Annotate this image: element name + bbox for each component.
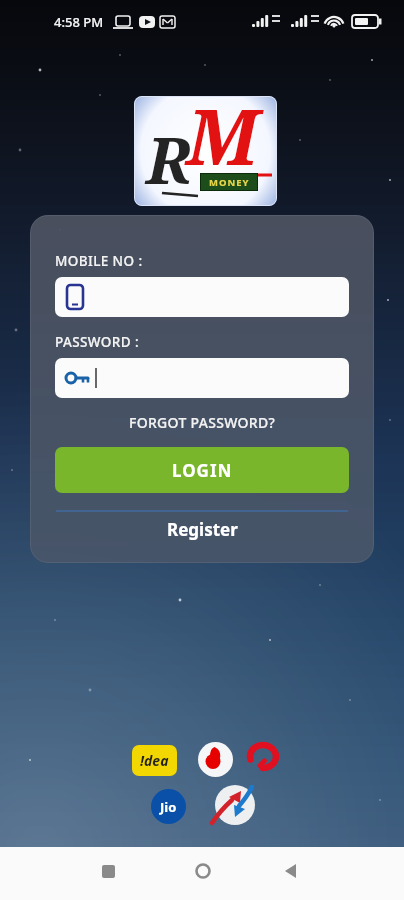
button[interactable]: Jio — [151, 789, 186, 824]
staticText: MONEY — [209, 176, 250, 189]
staticText: M — [186, 96, 259, 188]
staticText: !dea — [140, 751, 169, 770]
button[interactable]: LOGIN — [55, 447, 349, 493]
button[interactable] — [208, 783, 256, 828]
button[interactable]: R — [134, 96, 277, 206]
button[interactable] — [88, 851, 128, 891]
button[interactable] — [271, 851, 311, 891]
staticText: MOBILE NO : — [55, 252, 143, 270]
button[interactable] — [55, 277, 349, 317]
button[interactable] — [198, 742, 233, 777]
staticText: R — [146, 116, 192, 203]
staticText: FORGOT PASSWORD? — [129, 413, 276, 432]
button[interactable]: Register — [30, 518, 374, 541]
button[interactable] — [55, 358, 349, 398]
staticText: Jio — [160, 798, 177, 816]
button[interactable]: FORGOT PASSWORD? — [30, 413, 374, 432]
staticText: 4:58 PM — [54, 13, 104, 31]
staticText: Register — [167, 518, 238, 541]
button[interactable] — [183, 851, 223, 891]
button[interactable]: !dea — [132, 745, 177, 776]
button[interactable] — [246, 742, 280, 774]
staticText: PASSWORD : — [55, 333, 139, 351]
staticText: LOGIN — [172, 459, 233, 482]
